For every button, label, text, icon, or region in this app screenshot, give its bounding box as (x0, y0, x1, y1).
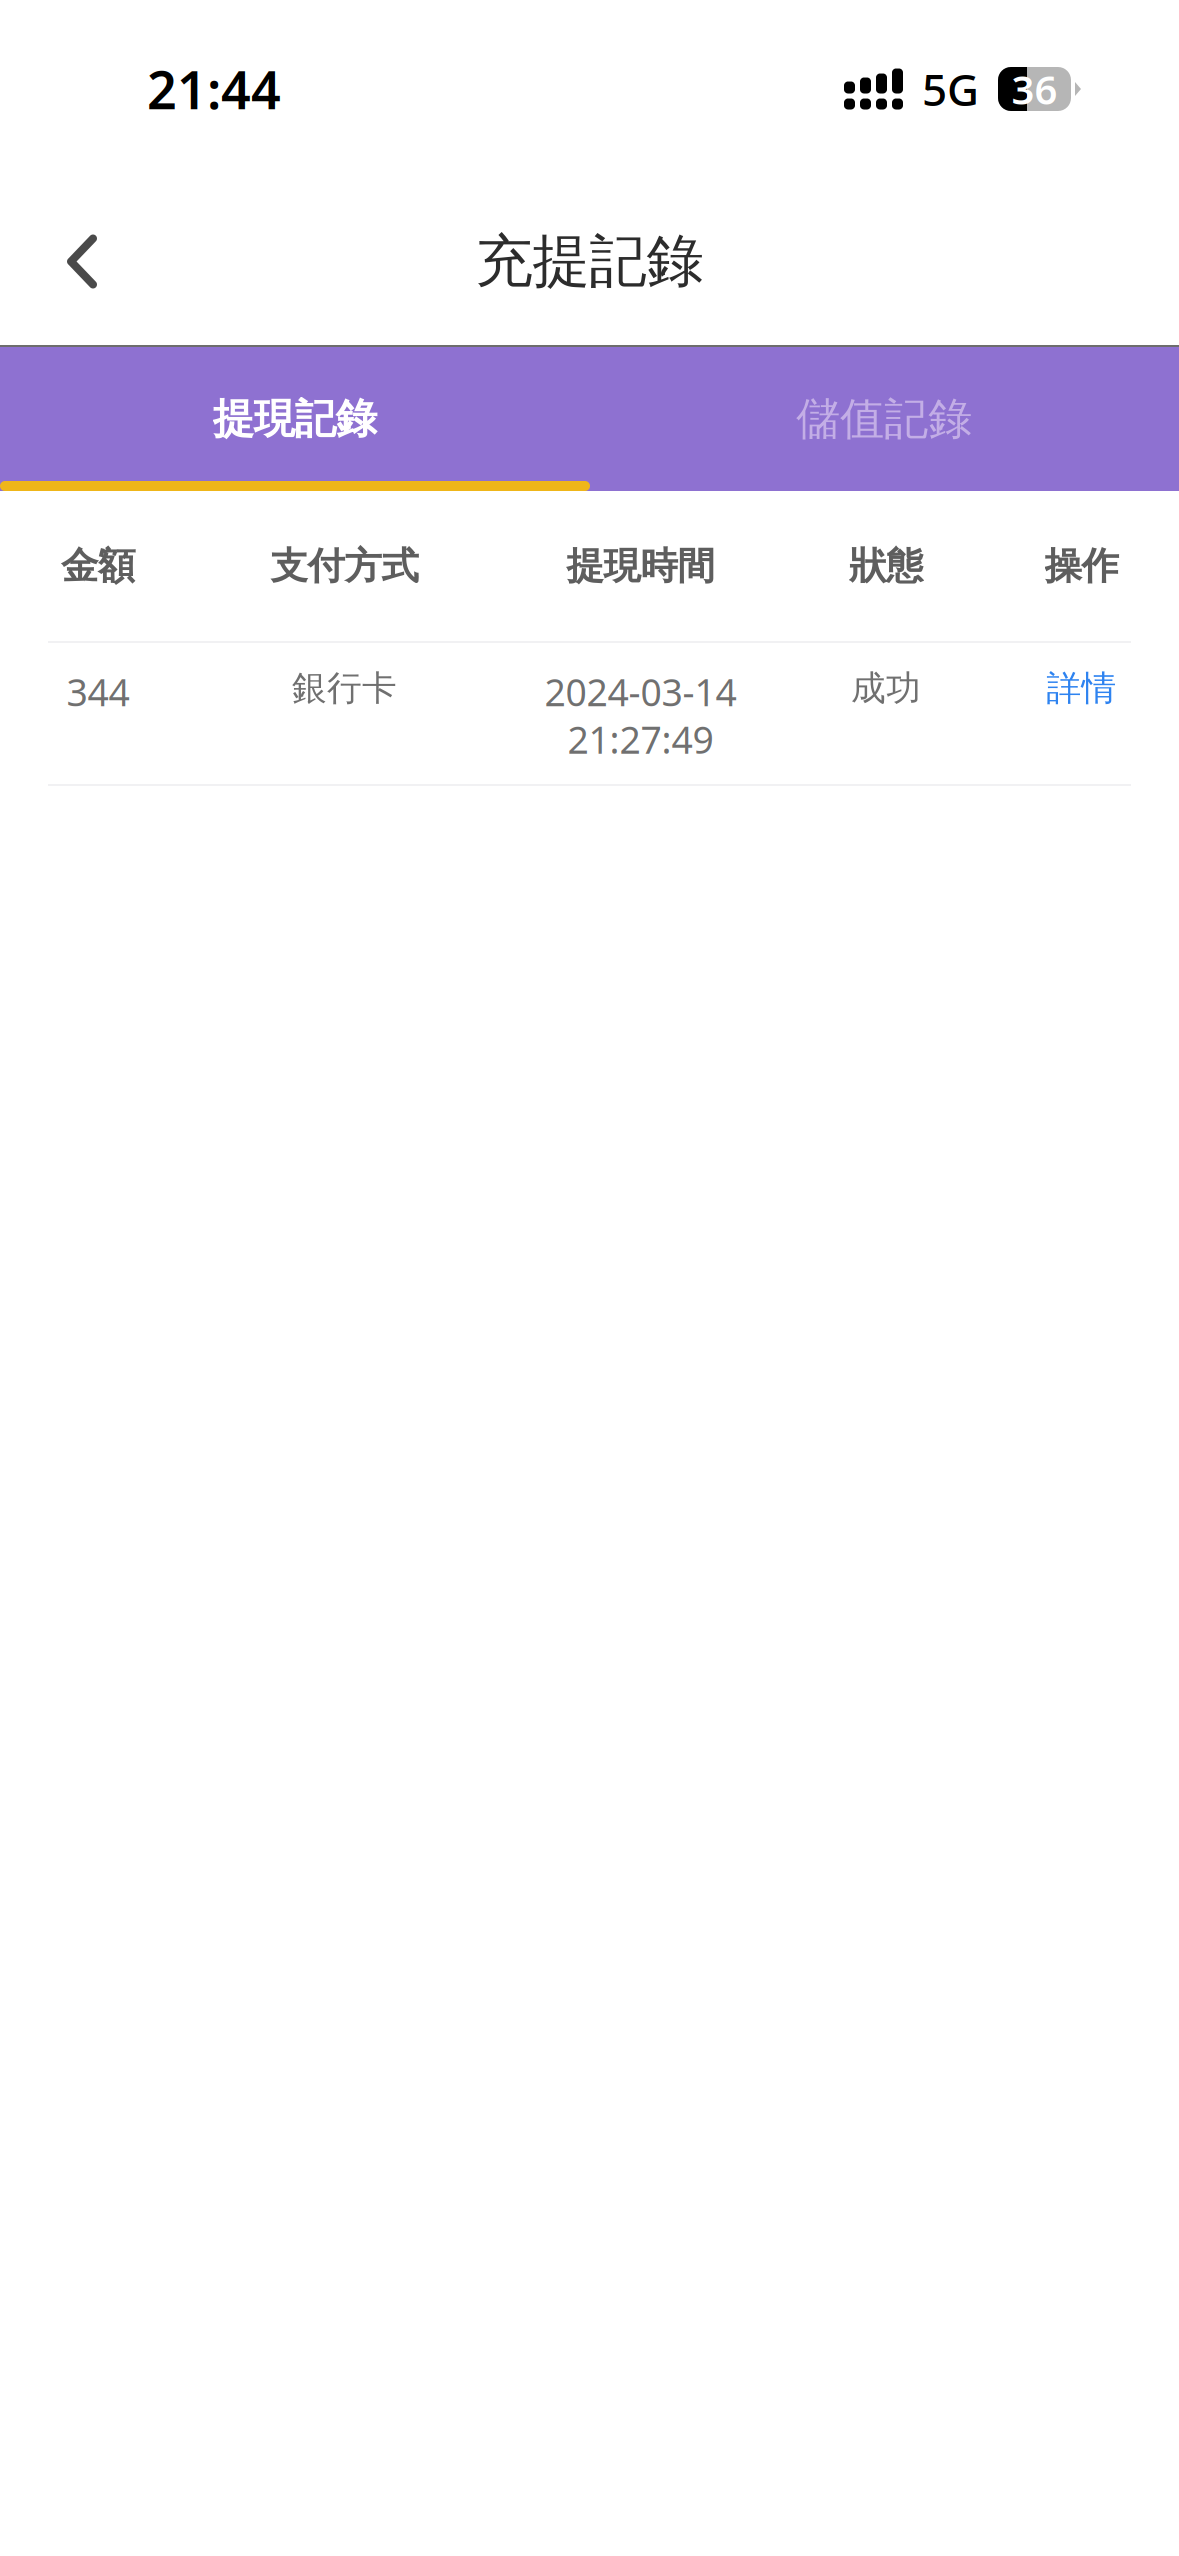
staticText: 充提記錄 (475, 226, 703, 297)
button[interactable]: 詳情 (984, 667, 1179, 808)
staticText: 狀態 (849, 543, 923, 589)
staticText: 提現時間 (566, 543, 714, 589)
staticText: 金額 (61, 543, 135, 589)
button[interactable]: Back (22, 201, 142, 321)
staticText: 36 (1011, 62, 1057, 115)
staticText: 銀行卡 (292, 667, 397, 710)
button[interactable]: 提現記錄 (0, 347, 589, 491)
staticText: 21:44 (147, 54, 281, 124)
staticText: 2024-03-14 (544, 667, 736, 717)
staticText: 操作 (1044, 543, 1118, 589)
staticText: 詳情 (1046, 667, 1116, 710)
staticText: 成功 (851, 667, 921, 710)
staticText: 儲值記錄 (796, 392, 972, 446)
staticText: 提現記錄 (213, 394, 377, 444)
button[interactable]: 儲值記錄 (589, 347, 1179, 491)
staticText: 支付方式 (270, 543, 418, 589)
staticText: 344 (66, 667, 129, 717)
staticText: 21:27:49 (567, 715, 713, 764)
staticText: 5G (922, 60, 979, 118)
